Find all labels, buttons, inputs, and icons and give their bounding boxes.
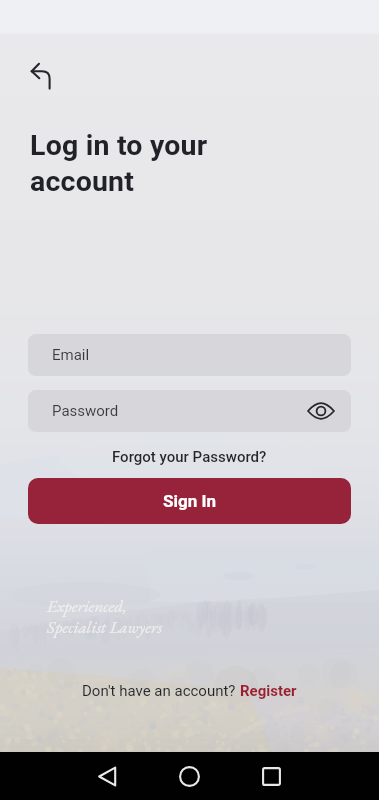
button[interactable]: Email xyxy=(28,334,351,376)
staticText: Password xyxy=(52,402,119,420)
staticText: Log in to your account xyxy=(30,129,208,198)
button[interactable]: Register xyxy=(240,682,297,700)
button[interactable] xyxy=(157,752,221,800)
button[interactable]: Password xyxy=(28,390,351,432)
button[interactable] xyxy=(17,53,61,97)
button[interactable] xyxy=(239,752,303,800)
staticText: Sign In xyxy=(163,491,216,511)
staticText: Don't have an account? xyxy=(82,682,240,700)
button[interactable] xyxy=(75,752,139,800)
button[interactable]: Forgot your Password? xyxy=(112,448,267,466)
staticText: Experienced, Specialist Lawyers xyxy=(47,595,163,638)
staticText: Email xyxy=(52,346,90,364)
button[interactable]: Sign In xyxy=(28,478,351,524)
